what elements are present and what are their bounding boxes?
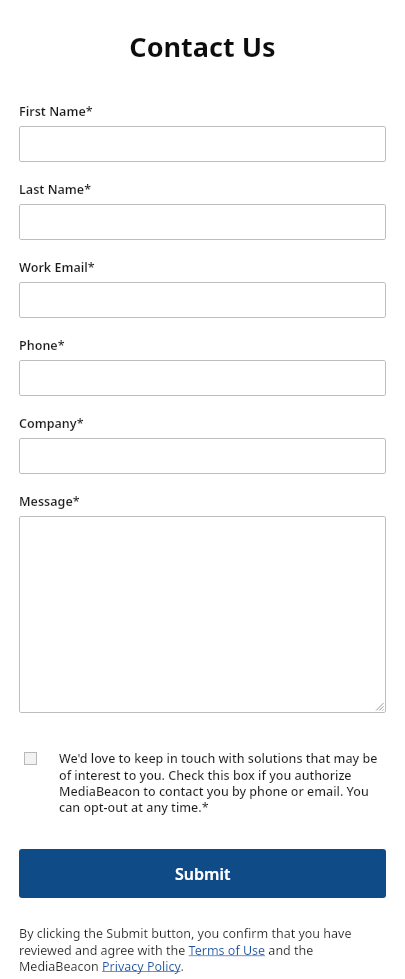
button[interactable] xyxy=(19,516,386,713)
staticText: Message* xyxy=(19,493,80,510)
staticText: Company* xyxy=(19,415,84,432)
button[interactable] xyxy=(19,282,386,318)
staticText: We'd love to keep in touch with solution… xyxy=(59,750,386,815)
staticText: Contact Us xyxy=(19,28,386,65)
button[interactable] xyxy=(19,360,386,396)
button[interactable]: Submit xyxy=(19,849,386,898)
button[interactable]: Consent checkbox xyxy=(19,750,386,815)
button[interactable] xyxy=(19,438,386,474)
staticText: Phone* xyxy=(19,337,65,354)
staticText: First Name* xyxy=(19,103,93,120)
other: Consent checkbox xyxy=(24,752,37,765)
button[interactable] xyxy=(19,204,386,240)
staticText: Submit xyxy=(175,863,231,885)
staticText: By clicking the Submit button, you confi… xyxy=(19,925,386,974)
button[interactable] xyxy=(19,126,386,162)
staticText: Work Email* xyxy=(19,259,95,276)
staticText: Last Name* xyxy=(19,181,91,198)
